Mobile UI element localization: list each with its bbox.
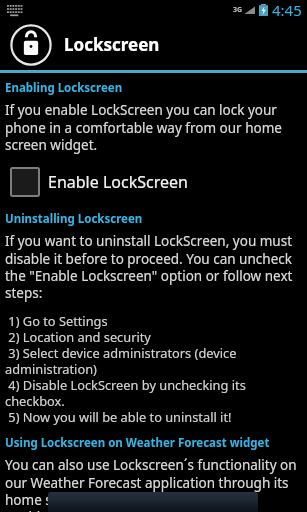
staticText: If you enable LockScreen you can lock yo… <box>5 101 302 154</box>
staticText: If you want to uninstall LockScreen, you… <box>5 232 302 302</box>
staticText: 1) Go to Settings 2) Location and securi… <box>5 312 302 425</box>
staticText: Uninstalling Lockscreen <box>5 211 143 227</box>
staticText: You can also use Lockscreen´s functional… <box>5 456 302 512</box>
staticText: 3G <box>233 5 243 15</box>
staticText: 4:45 <box>272 0 302 19</box>
other: App icon <box>10 24 52 66</box>
staticText: Lockscreen <box>64 33 160 56</box>
staticText: Using Lockscreen on Weather Forecast wid… <box>5 435 270 451</box>
staticText: Enabling Lockscreen <box>5 80 123 96</box>
button[interactable]: App icon <box>0 19 307 70</box>
staticText: Enable LockScreen <box>48 171 188 193</box>
button[interactable]: Promo banner <box>48 492 258 512</box>
button[interactable]: Enable LockScreen <box>5 165 302 199</box>
